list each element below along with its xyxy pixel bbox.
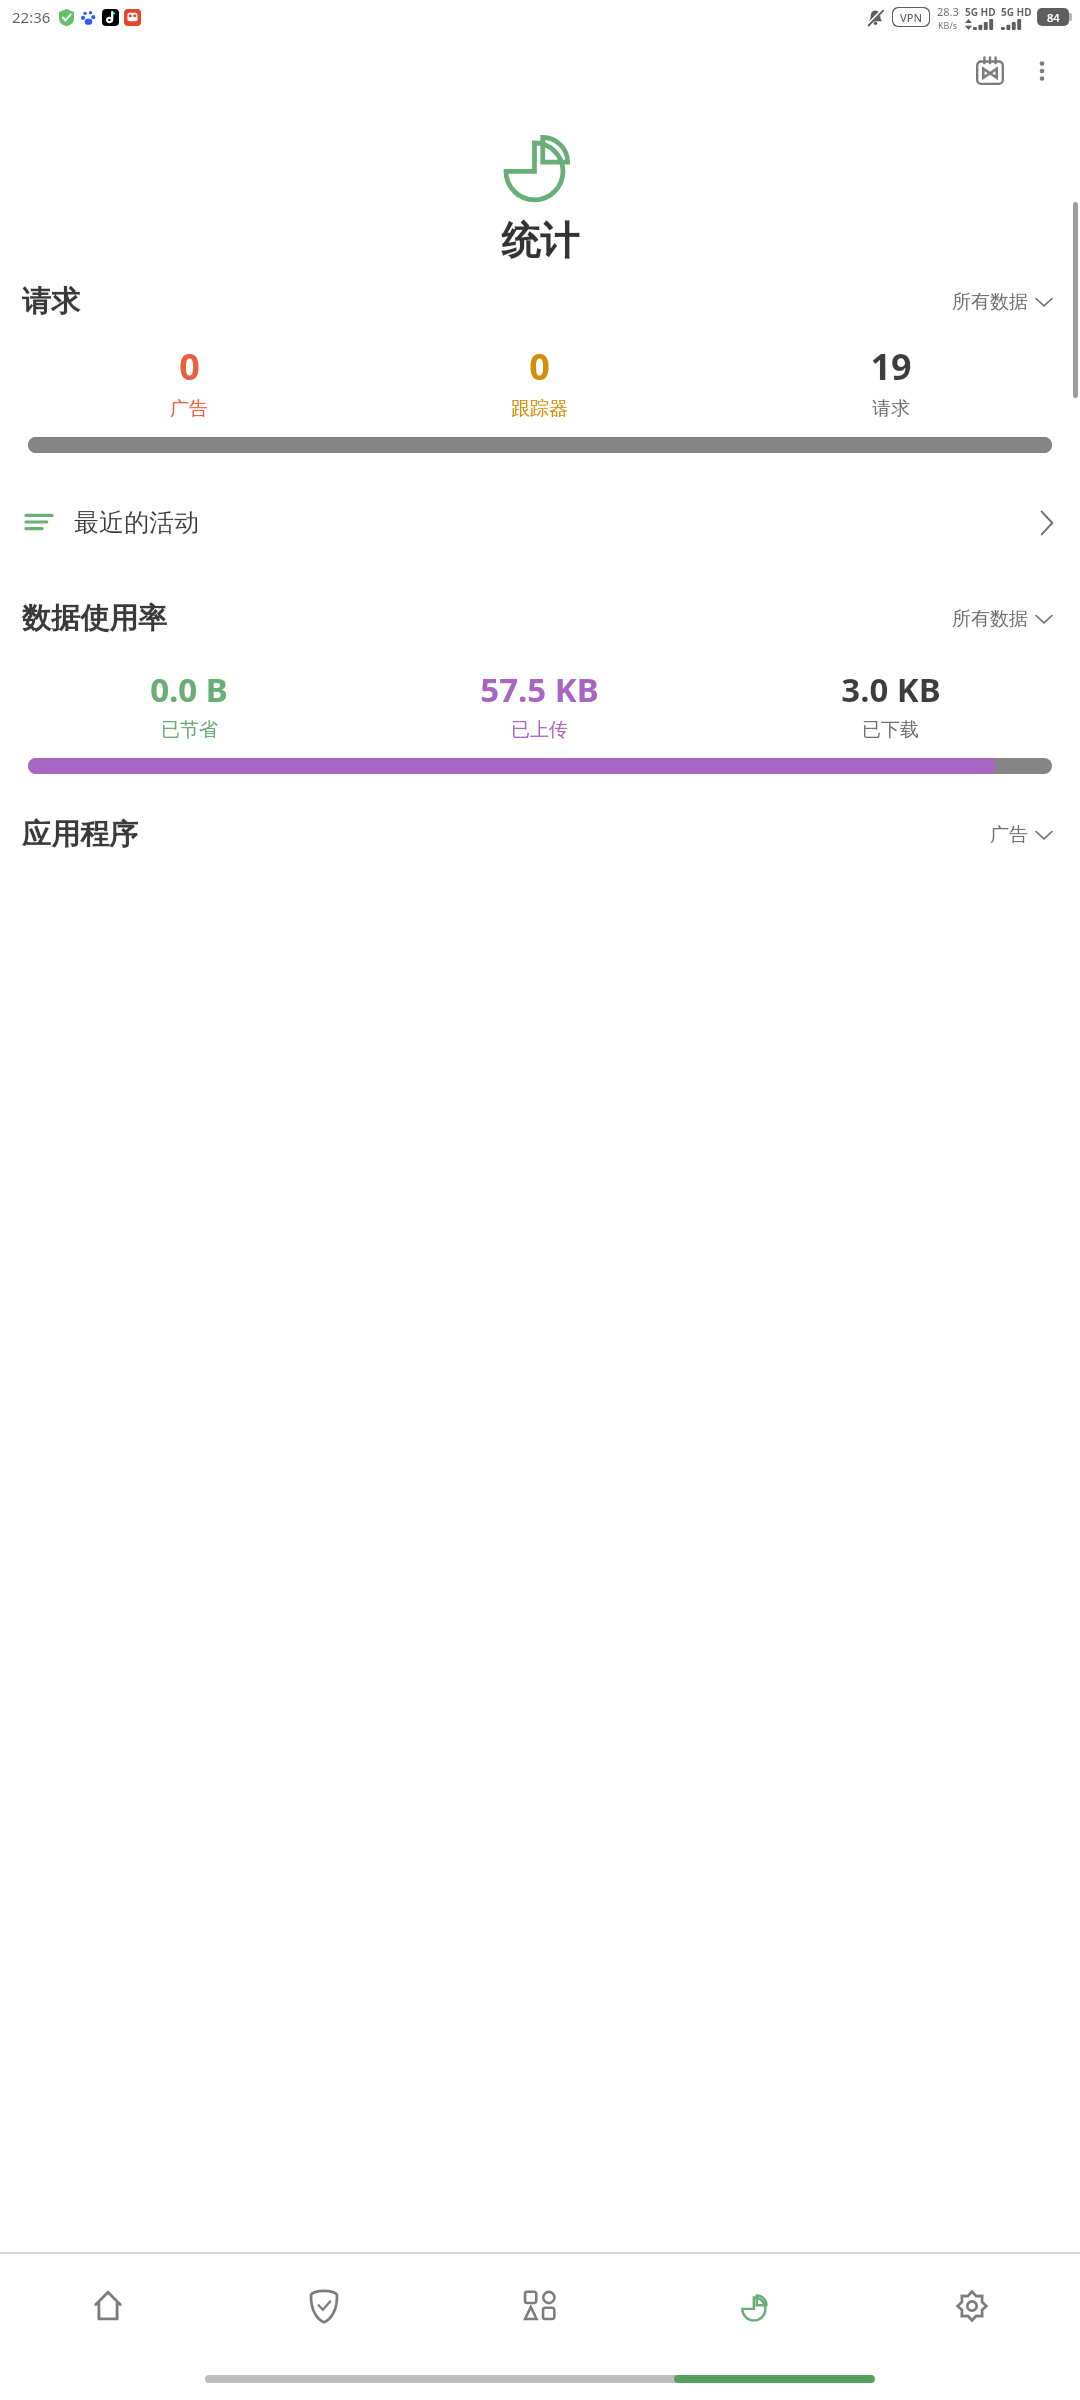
staticText: 请求: [22, 283, 80, 320]
staticText: 广告: [170, 397, 208, 421]
button[interactable]: 0.0 B: [14, 667, 364, 742]
button[interactable]: 19: [715, 342, 1066, 421]
button[interactable]: 0: [364, 342, 715, 421]
button[interactable]: 57.5 KB: [364, 667, 715, 742]
button[interactable]: Settings: [864, 2254, 1080, 2358]
button[interactable]: Protection: [216, 2254, 432, 2358]
button[interactable]: Date range: [964, 45, 1016, 97]
staticText: 19: [870, 342, 912, 391]
button[interactable]: 广告: [984, 817, 1058, 853]
button[interactable]: 最近的活动: [0, 499, 1080, 546]
button[interactable]: 所有数据: [946, 601, 1058, 637]
staticText: 28.3: [937, 4, 959, 19]
staticText: 已节省: [161, 718, 218, 742]
staticText: 应用程序: [22, 816, 138, 853]
staticText: 广告: [990, 823, 1028, 847]
staticText: 0: [529, 342, 550, 391]
staticText: 跟踪器: [511, 397, 568, 421]
staticText: 57.5 KB: [480, 667, 599, 712]
staticText: 5G HD: [965, 5, 996, 19]
button[interactable]: Statistics: [648, 2254, 864, 2358]
button[interactable]: 3.0 KB: [715, 667, 1066, 742]
staticText: 统计: [501, 216, 579, 265]
staticText: 22:36: [12, 7, 51, 27]
button[interactable]: More options: [1016, 45, 1068, 97]
button[interactable]: Home: [0, 2254, 216, 2358]
staticText: 最近的活动: [74, 507, 199, 538]
staticText: 5G HD: [1001, 5, 1032, 19]
button[interactable]: Apps: [432, 2254, 648, 2358]
staticText: KB/s: [938, 19, 958, 31]
staticText: 3.0 KB: [841, 667, 941, 712]
staticText: 所有数据: [952, 607, 1028, 631]
staticText: 0: [179, 342, 200, 391]
staticText: 数据使用率: [22, 600, 167, 637]
staticText: 已下载: [862, 718, 919, 742]
staticText: VPN: [900, 10, 923, 25]
staticText: 84: [1047, 10, 1060, 25]
staticText: 所有数据: [952, 290, 1028, 314]
staticText: 0.0 B: [150, 667, 228, 712]
button[interactable]: 0: [14, 342, 364, 421]
staticText: 请求: [872, 397, 910, 421]
button[interactable]: 所有数据: [946, 284, 1058, 320]
staticText: 已上传: [511, 718, 568, 742]
